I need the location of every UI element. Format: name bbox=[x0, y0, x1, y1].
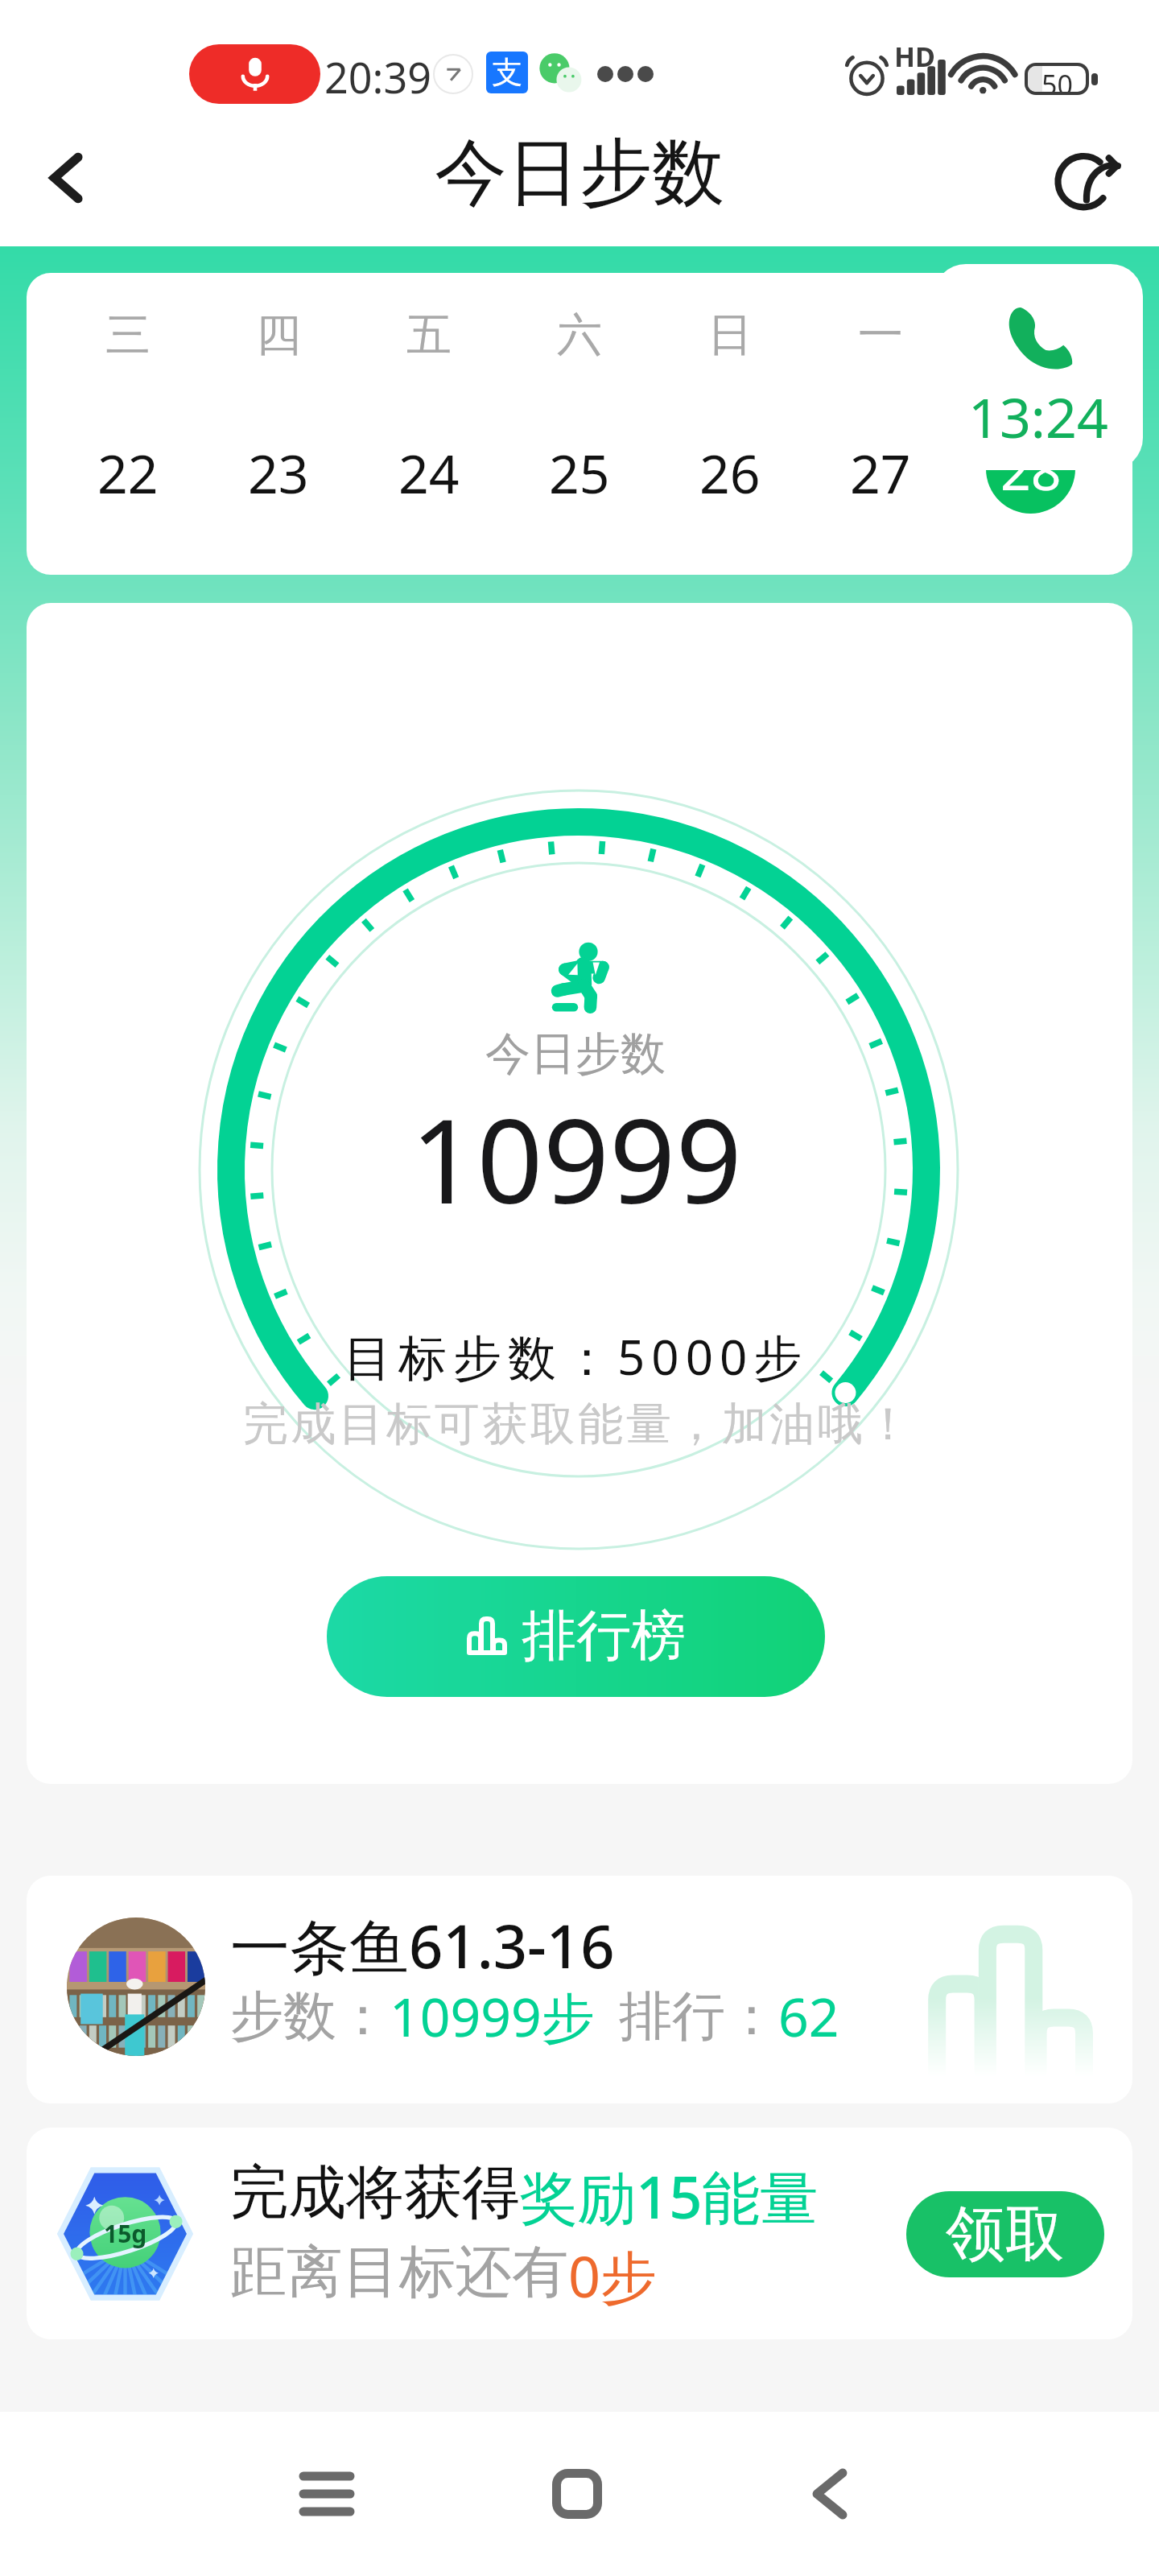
staticText: 排行： bbox=[619, 1983, 778, 2050]
staticText: 25 bbox=[549, 436, 610, 509]
staticText: 奖励15能量 bbox=[520, 2157, 819, 2235]
staticText: 13:24 bbox=[968, 379, 1108, 454]
staticText: 步数： bbox=[230, 1983, 390, 2050]
button[interactable]: 三 bbox=[52, 273, 203, 575]
button[interactable]: Home bbox=[530, 2412, 625, 2576]
button[interactable]: 五 bbox=[353, 273, 504, 575]
staticText: 一 bbox=[858, 307, 903, 364]
staticText: 一条鱼61.3-16 bbox=[230, 1905, 615, 1986]
staticText: 0步 bbox=[568, 2237, 658, 2314]
button[interactable]: 15g bbox=[27, 2128, 1132, 2339]
staticText: 26 bbox=[699, 436, 761, 509]
staticText: 10999步 bbox=[390, 1979, 595, 2052]
button[interactable]: 排行榜 bbox=[327, 1576, 825, 1697]
button[interactable]: Back bbox=[32, 141, 106, 215]
staticText: 完成目标可获取能量，加油哦！ bbox=[241, 1396, 912, 1453]
button[interactable]: 一条鱼61.3-16 bbox=[27, 1876, 1132, 2103]
staticText: 20:39 bbox=[324, 48, 431, 105]
staticText: 三 bbox=[105, 307, 151, 364]
staticText: 二 bbox=[1008, 307, 1054, 364]
button[interactable]: Recent apps bbox=[279, 2412, 374, 2576]
button[interactable]: 四 bbox=[203, 273, 353, 575]
staticText: 50 bbox=[1041, 66, 1073, 92]
staticText: 15g bbox=[104, 2217, 147, 2250]
staticText: 23 bbox=[248, 436, 309, 509]
staticText: 四 bbox=[256, 307, 301, 364]
staticText: 10999 bbox=[410, 1080, 742, 1237]
button[interactable]: 一 bbox=[805, 273, 955, 575]
button[interactable]: Ongoing call 13:24 bbox=[934, 264, 1143, 470]
staticText: 目标步数：5000步 bbox=[344, 1323, 809, 1389]
staticText: 日 bbox=[707, 307, 753, 364]
staticText: 22 bbox=[97, 436, 159, 509]
staticText: 今日步数 bbox=[435, 127, 724, 218]
staticText: 支 bbox=[492, 53, 522, 92]
staticText: 排行榜 bbox=[522, 1602, 686, 1671]
button[interactable]: 领取 bbox=[906, 2191, 1104, 2277]
button[interactable]: Back bbox=[782, 2412, 877, 2576]
button[interactable]: 六 bbox=[504, 273, 654, 575]
staticText: 距离目标还有 bbox=[230, 2237, 568, 2308]
staticText: 完成将获得 bbox=[230, 2157, 520, 2230]
staticText: 24 bbox=[398, 436, 460, 509]
staticText: HD bbox=[894, 38, 935, 75]
staticText: 28 bbox=[1000, 433, 1062, 506]
staticText: 六 bbox=[557, 307, 602, 364]
staticText: 27 bbox=[850, 436, 911, 509]
button[interactable]: 日 bbox=[654, 273, 805, 575]
button[interactable]: 二 bbox=[955, 273, 1106, 575]
staticText: 62 bbox=[778, 1979, 839, 2052]
staticText: 领取 bbox=[946, 2197, 1065, 2272]
staticText: 五 bbox=[406, 307, 452, 364]
staticText: 今日步数 bbox=[485, 1026, 666, 1083]
button[interactable]: Share bbox=[1048, 137, 1125, 214]
